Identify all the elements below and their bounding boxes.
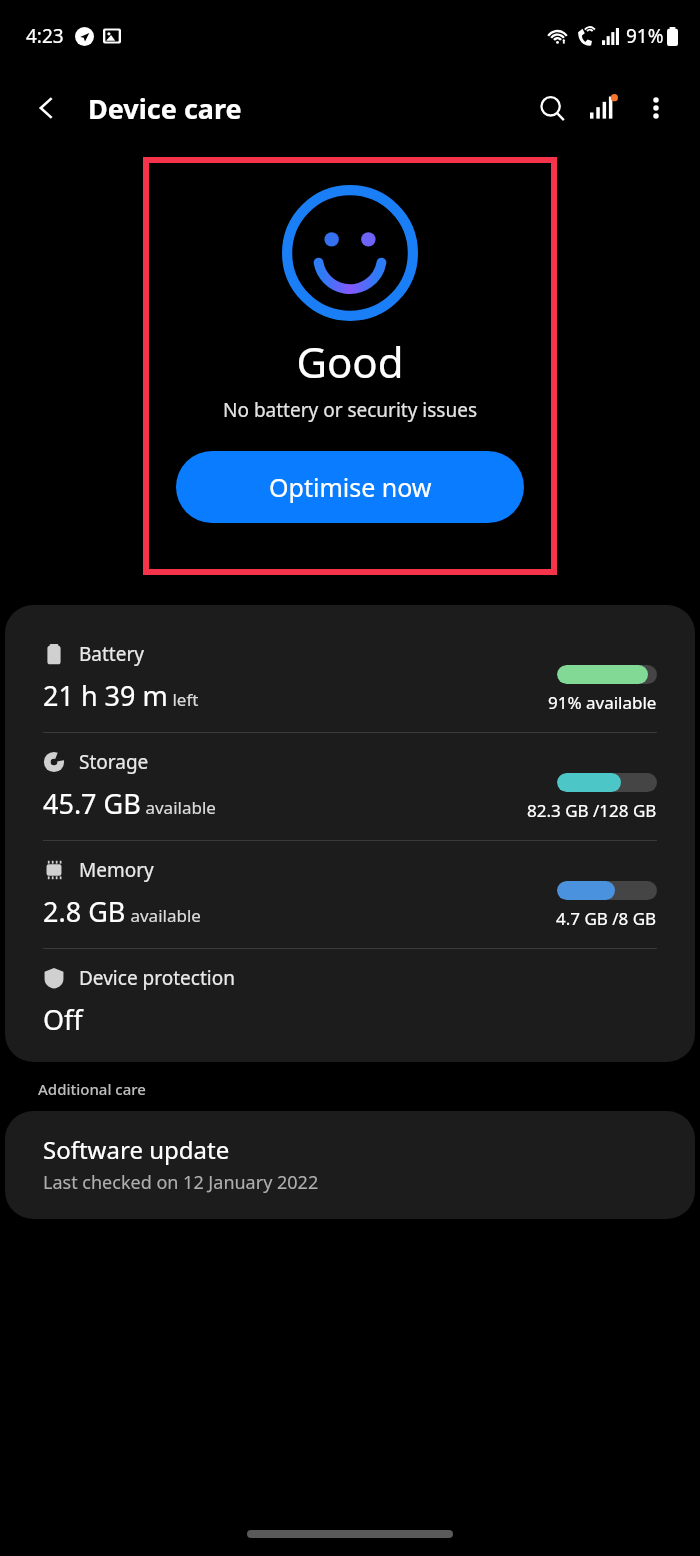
staticText: Storage (79, 749, 149, 775)
staticText: 91% (626, 23, 664, 49)
staticText: No battery or security issues (223, 397, 477, 423)
staticText: Device care (88, 90, 242, 127)
staticText: Good (296, 333, 404, 390)
button[interactable]: More options (630, 82, 682, 134)
staticText: 4:23 (26, 23, 64, 49)
button[interactable]: Usage statistics (578, 82, 630, 134)
staticText: 82.3 GB /128 GB (527, 799, 657, 822)
staticText: Off (43, 1001, 83, 1038)
button[interactable]: Storage (5, 733, 695, 840)
staticText: left (168, 688, 199, 711)
button[interactable]: Back (22, 83, 72, 133)
staticText: 91% available (548, 691, 657, 714)
staticText: Additional care (38, 1079, 146, 1099)
button[interactable]: Device protection (5, 949, 695, 1062)
button[interactable]: Battery (5, 625, 695, 732)
staticText: Last checked on 12 January 2022 (43, 1170, 319, 1195)
staticText: 45.7 GB (43, 785, 141, 822)
staticText: Memory (79, 857, 154, 883)
button[interactable]: Search (526, 82, 578, 134)
staticText: available (126, 904, 201, 927)
staticText: available (141, 796, 216, 819)
staticText: Software update (43, 1133, 230, 1166)
staticText: 4.7 GB /8 GB (556, 907, 657, 930)
button[interactable]: Good (143, 157, 557, 575)
button[interactable]: Software update (5, 1111, 695, 1219)
button[interactable]: Memory (5, 841, 695, 948)
staticText: Optimise now (269, 470, 432, 504)
staticText: 21 h 39 m (43, 677, 168, 714)
staticText: 2.8 GB (43, 893, 126, 930)
button[interactable]: Optimise now (176, 451, 524, 523)
staticText: Device protection (79, 965, 235, 991)
staticText: Battery (79, 641, 144, 667)
